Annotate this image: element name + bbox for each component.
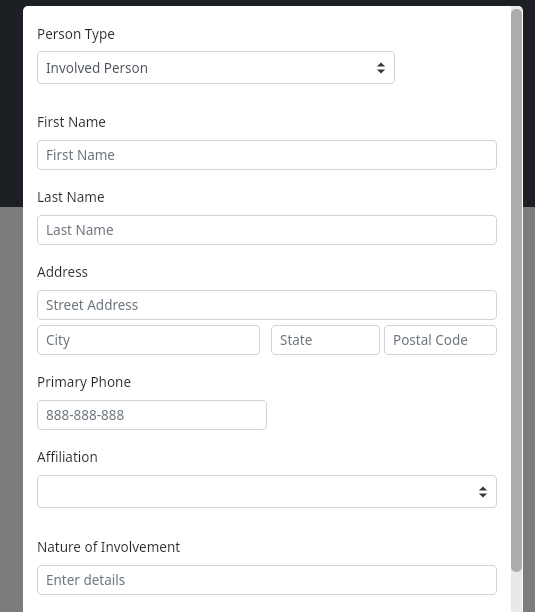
button[interactable]: Postal Code xyxy=(384,325,497,355)
button[interactable]: Enter details xyxy=(37,565,497,595)
staticText: Street Address xyxy=(46,296,139,314)
staticText: First Name xyxy=(46,146,115,164)
staticText: Address xyxy=(37,263,89,281)
staticText: Enter details xyxy=(46,571,126,589)
button[interactable]: Affiliation xyxy=(37,475,497,508)
staticText: Involved Person xyxy=(46,59,149,77)
staticText: Postal Code xyxy=(393,331,468,349)
button[interactable]: 888-888-888 xyxy=(37,400,267,430)
button[interactable]: State xyxy=(271,325,380,355)
staticText: Primary Phone xyxy=(37,373,132,391)
staticText: First Name xyxy=(37,113,106,131)
button[interactable]: First Name xyxy=(37,140,497,170)
button[interactable]: City xyxy=(37,325,260,355)
staticText: Last Name xyxy=(37,188,105,206)
staticText: 888-888-888 xyxy=(46,406,125,424)
staticText: City xyxy=(46,331,70,349)
staticText: Person Type xyxy=(37,25,115,43)
button[interactable]: Street Address xyxy=(37,290,497,320)
staticText: State xyxy=(280,331,313,349)
button[interactable]: Last Name xyxy=(37,215,497,245)
button[interactable]: Person Type xyxy=(37,51,395,84)
staticText: Last Name xyxy=(46,221,114,239)
staticText: Nature of Involvement xyxy=(37,538,181,556)
staticText: Affiliation xyxy=(37,448,98,466)
